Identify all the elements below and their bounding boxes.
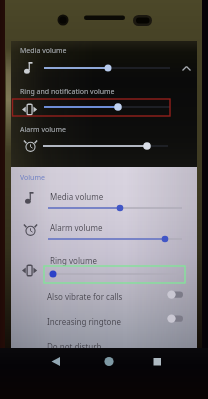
staticText: Volume [20, 173, 45, 183]
button[interactable]: Back [46, 351, 66, 371]
button[interactable]: Home [99, 351, 119, 371]
button[interactable]: Also vibrate for calls [165, 288, 187, 301]
button[interactable]: Recent apps [147, 351, 167, 371]
staticText: Media volume [20, 46, 67, 56]
button[interactable]: Collapse volume panel [179, 61, 194, 76]
staticText: Alarm volume [20, 125, 66, 135]
staticText: Alarm volume [50, 222, 103, 233]
staticText: Ring volume [50, 255, 97, 266]
staticText: Ring and notification volume [20, 87, 115, 97]
staticText: Also vibrate for calls [47, 291, 123, 302]
staticText: Media volume [50, 191, 104, 202]
button[interactable]: Increasing ringtone [165, 312, 187, 325]
staticText: Increasing ringtone [47, 316, 121, 327]
staticText: Do not disturb [47, 341, 102, 352]
